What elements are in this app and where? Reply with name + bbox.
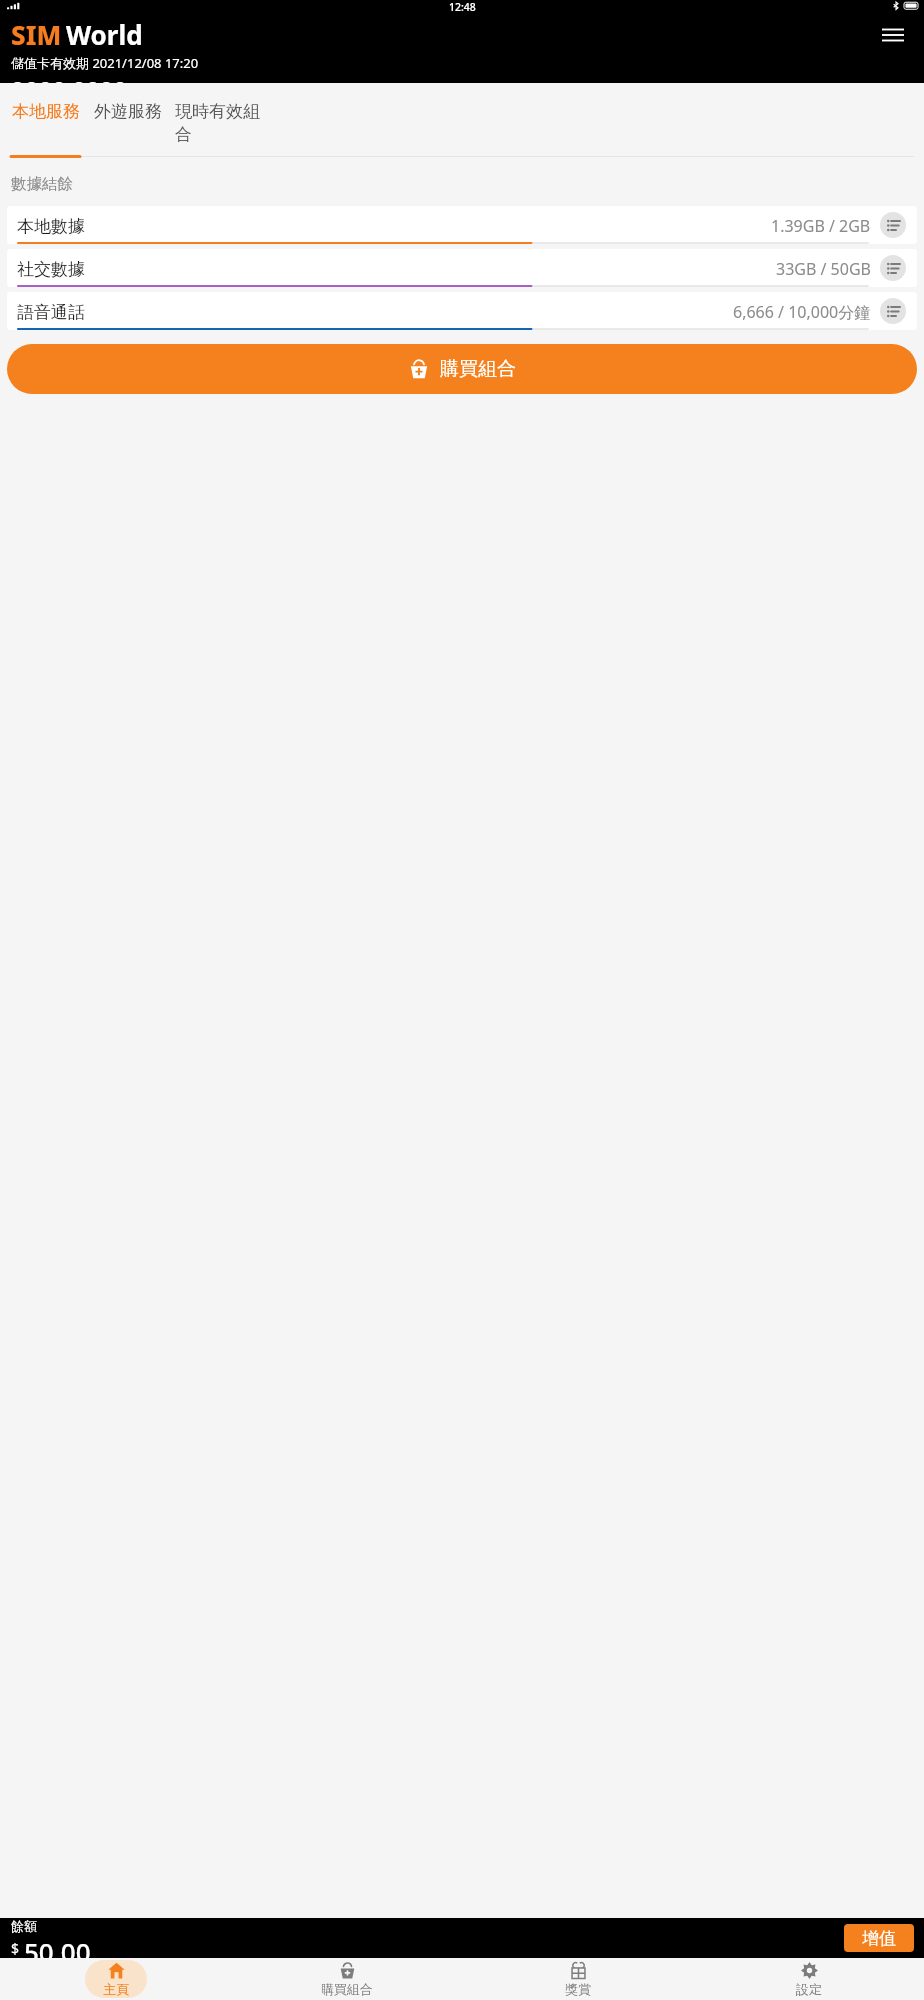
staticText: 社交數據 [17, 259, 85, 280]
button[interactable]: Menu [876, 18, 910, 52]
staticText: 9000 0000 [11, 73, 128, 83]
staticText: 1.39GB / 2GB [771, 215, 871, 237]
staticText: 外遊服務 [94, 101, 162, 122]
button[interactable]: 設定 [778, 1960, 840, 1998]
button[interactable]: 本地數據 [7, 206, 917, 244]
staticText: World [66, 17, 143, 52]
button[interactable]: 獎賞 [547, 1960, 609, 1998]
staticText: 數據結餘 [11, 174, 73, 194]
button[interactable]: 社交數據 [7, 249, 917, 287]
button[interactable]: 語音通話 [7, 292, 917, 330]
staticText: 主頁 [103, 1981, 129, 1997]
staticText: 購買組合 [321, 1981, 373, 1997]
staticText: $ [11, 1939, 20, 1958]
staticText: 現時有效組合 [175, 101, 262, 145]
button[interactable]: 購買組合 [316, 1960, 378, 1998]
staticText: 餘額 [11, 1918, 37, 1934]
button[interactable]: 外遊服務 [93, 101, 162, 122]
staticText: 購買組合 [440, 357, 516, 381]
button[interactable]: 購買組合 [7, 344, 917, 394]
staticText: 語音通話 [17, 302, 85, 323]
staticText: 增值 [862, 1928, 896, 1949]
button[interactable]: Details [880, 255, 906, 281]
staticText: 本地數據 [17, 216, 85, 237]
button[interactable]: Details [880, 212, 906, 238]
staticText: 33GB / 50GB [776, 258, 871, 280]
staticText: 50.00 [24, 1934, 91, 1958]
button[interactable]: Details [880, 298, 906, 324]
button[interactable]: 本地服務 [11, 101, 80, 122]
staticText: 6,666 / 10,000分鐘 [733, 301, 871, 323]
staticText: SIM [11, 17, 62, 52]
staticText: 本地服務 [12, 101, 80, 122]
button[interactable]: 現時有效組合 [175, 101, 262, 145]
staticText: 儲值卡有效期 2021/12/08 17:20 [11, 54, 199, 72]
staticText: 獎賞 [565, 1981, 591, 1997]
button[interactable]: 增值 [844, 1924, 914, 1952]
staticText: 12:48 [449, 0, 476, 13]
staticText: 設定 [796, 1981, 822, 1997]
button[interactable]: 主頁 [85, 1960, 147, 1998]
